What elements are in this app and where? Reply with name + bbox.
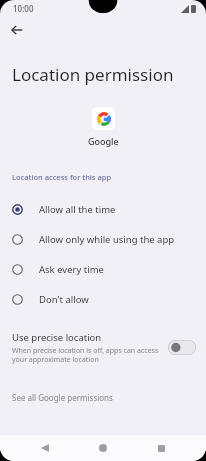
staticText: See all Google permissions xyxy=(12,392,113,403)
button[interactable]: Allow only while using the app xyxy=(0,224,206,254)
button[interactable]: Recent apps xyxy=(148,435,174,461)
button[interactable]: Back xyxy=(32,435,58,461)
button[interactable]: Don't allow xyxy=(0,284,206,314)
staticText: Allow all the time xyxy=(39,203,116,216)
staticText: Location access for this app xyxy=(12,172,112,182)
button[interactable]: Back xyxy=(5,18,29,42)
staticText: Google xyxy=(88,135,119,147)
button[interactable]: Use precise location xyxy=(0,328,206,367)
staticText: Don't allow xyxy=(39,293,89,306)
staticText: Ask every time xyxy=(39,263,104,276)
button[interactable]: Ask every time xyxy=(0,254,206,284)
button[interactable]: Allow all the time xyxy=(0,194,206,224)
button[interactable]: See all Google permissions xyxy=(0,389,206,406)
staticText: When precise location is off, apps can a… xyxy=(12,346,160,364)
staticText: Use precise location xyxy=(12,331,102,344)
staticText: Allow only while using the app xyxy=(39,233,175,246)
staticText: Location permission xyxy=(12,63,174,86)
button[interactable]: Home xyxy=(90,435,116,461)
staticText: 10:00 xyxy=(13,3,34,14)
button[interactable]: Use precise location xyxy=(168,340,196,355)
